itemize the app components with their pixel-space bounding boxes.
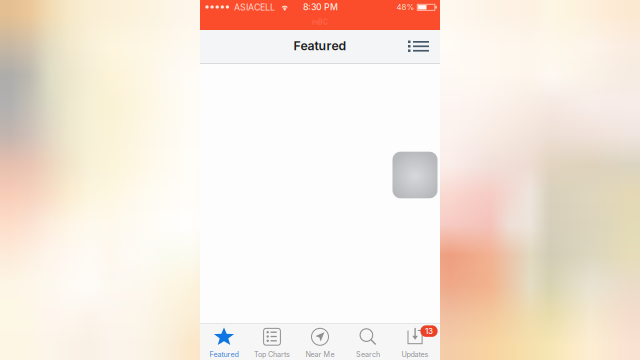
staticText: Search [356,350,380,359]
staticText: 8:30 PM [303,2,338,12]
staticText: Updates [401,350,428,359]
button[interactable]: Updates [391,323,439,360]
staticText: ASIACELL [234,2,275,12]
staticText: 13 [425,326,433,336]
button[interactable]: Near Me [296,323,344,360]
button[interactable]: Search [344,323,392,360]
staticText: Near Me [305,350,334,359]
staticText: 48% [397,2,415,12]
button[interactable]: Top Charts [248,323,296,360]
staticText: mBC [312,18,328,26]
staticText: Featured [209,350,238,359]
button[interactable]: List view [400,31,436,61]
button[interactable]: Featured [200,323,248,360]
staticText: Top Charts [254,350,290,359]
staticText: Featured [293,38,346,53]
